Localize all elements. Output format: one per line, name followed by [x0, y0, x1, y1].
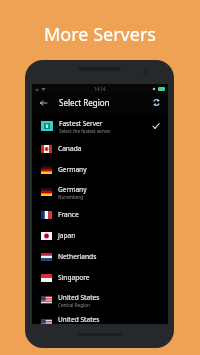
staticText: United States: [58, 293, 100, 302]
button[interactable]: Back: [37, 96, 50, 109]
button[interactable]: Singapore: [32, 267, 168, 288]
button[interactable]: France: [32, 204, 168, 225]
staticText: Central Region: [58, 302, 90, 308]
staticText: Fastest Server: [59, 119, 103, 128]
button[interactable]: Germany: [32, 159, 168, 180]
staticText: Canada: [58, 144, 82, 153]
staticText: United States: [58, 315, 100, 324]
staticText: Select Region: [59, 97, 110, 108]
staticText: Netherlands: [58, 252, 97, 261]
button[interactable]: Germany: [32, 180, 168, 204]
staticText: More Servers: [44, 22, 156, 47]
staticText: Nuremberg: [58, 194, 84, 200]
staticText: Select the fastest server: [59, 128, 111, 134]
button[interactable]: Japan: [32, 225, 168, 246]
button[interactable]: Netherlands: [32, 246, 168, 267]
button[interactable]: United States: [32, 312, 168, 324]
button[interactable]: Canada: [32, 138, 168, 159]
staticText: Germany: [58, 165, 87, 174]
staticText: Singapore: [58, 273, 90, 282]
staticText: France: [58, 210, 79, 219]
staticText: Germany: [58, 185, 87, 194]
button[interactable]: Fastest Server: [32, 114, 168, 138]
button[interactable]: Refresh: [150, 96, 163, 109]
staticText: Japan: [58, 231, 76, 240]
staticText: 14:14: [94, 86, 106, 92]
button[interactable]: United States: [32, 288, 168, 312]
